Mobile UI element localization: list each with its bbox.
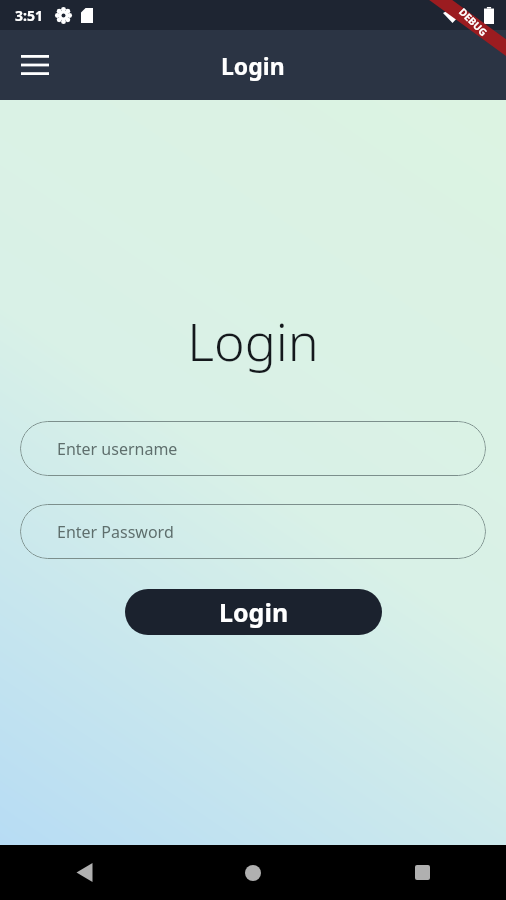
staticText: 3:51 (15, 6, 43, 25)
button[interactable]: Enter Password (20, 504, 486, 559)
staticText: Enter Password (57, 521, 174, 543)
button[interactable]: Enter username (20, 421, 486, 476)
button[interactable]: Home (225, 845, 281, 900)
staticText: Login (187, 305, 319, 376)
staticText: Login (219, 595, 289, 629)
button[interactable]: Login (125, 589, 382, 635)
staticText: Enter username (57, 438, 178, 460)
button[interactable]: Open navigation menu (12, 42, 58, 88)
staticText: DEBUG (456, 5, 491, 39)
button[interactable]: Recent apps (394, 845, 450, 900)
staticText: Login (221, 50, 285, 81)
button[interactable]: Back (56, 845, 112, 900)
